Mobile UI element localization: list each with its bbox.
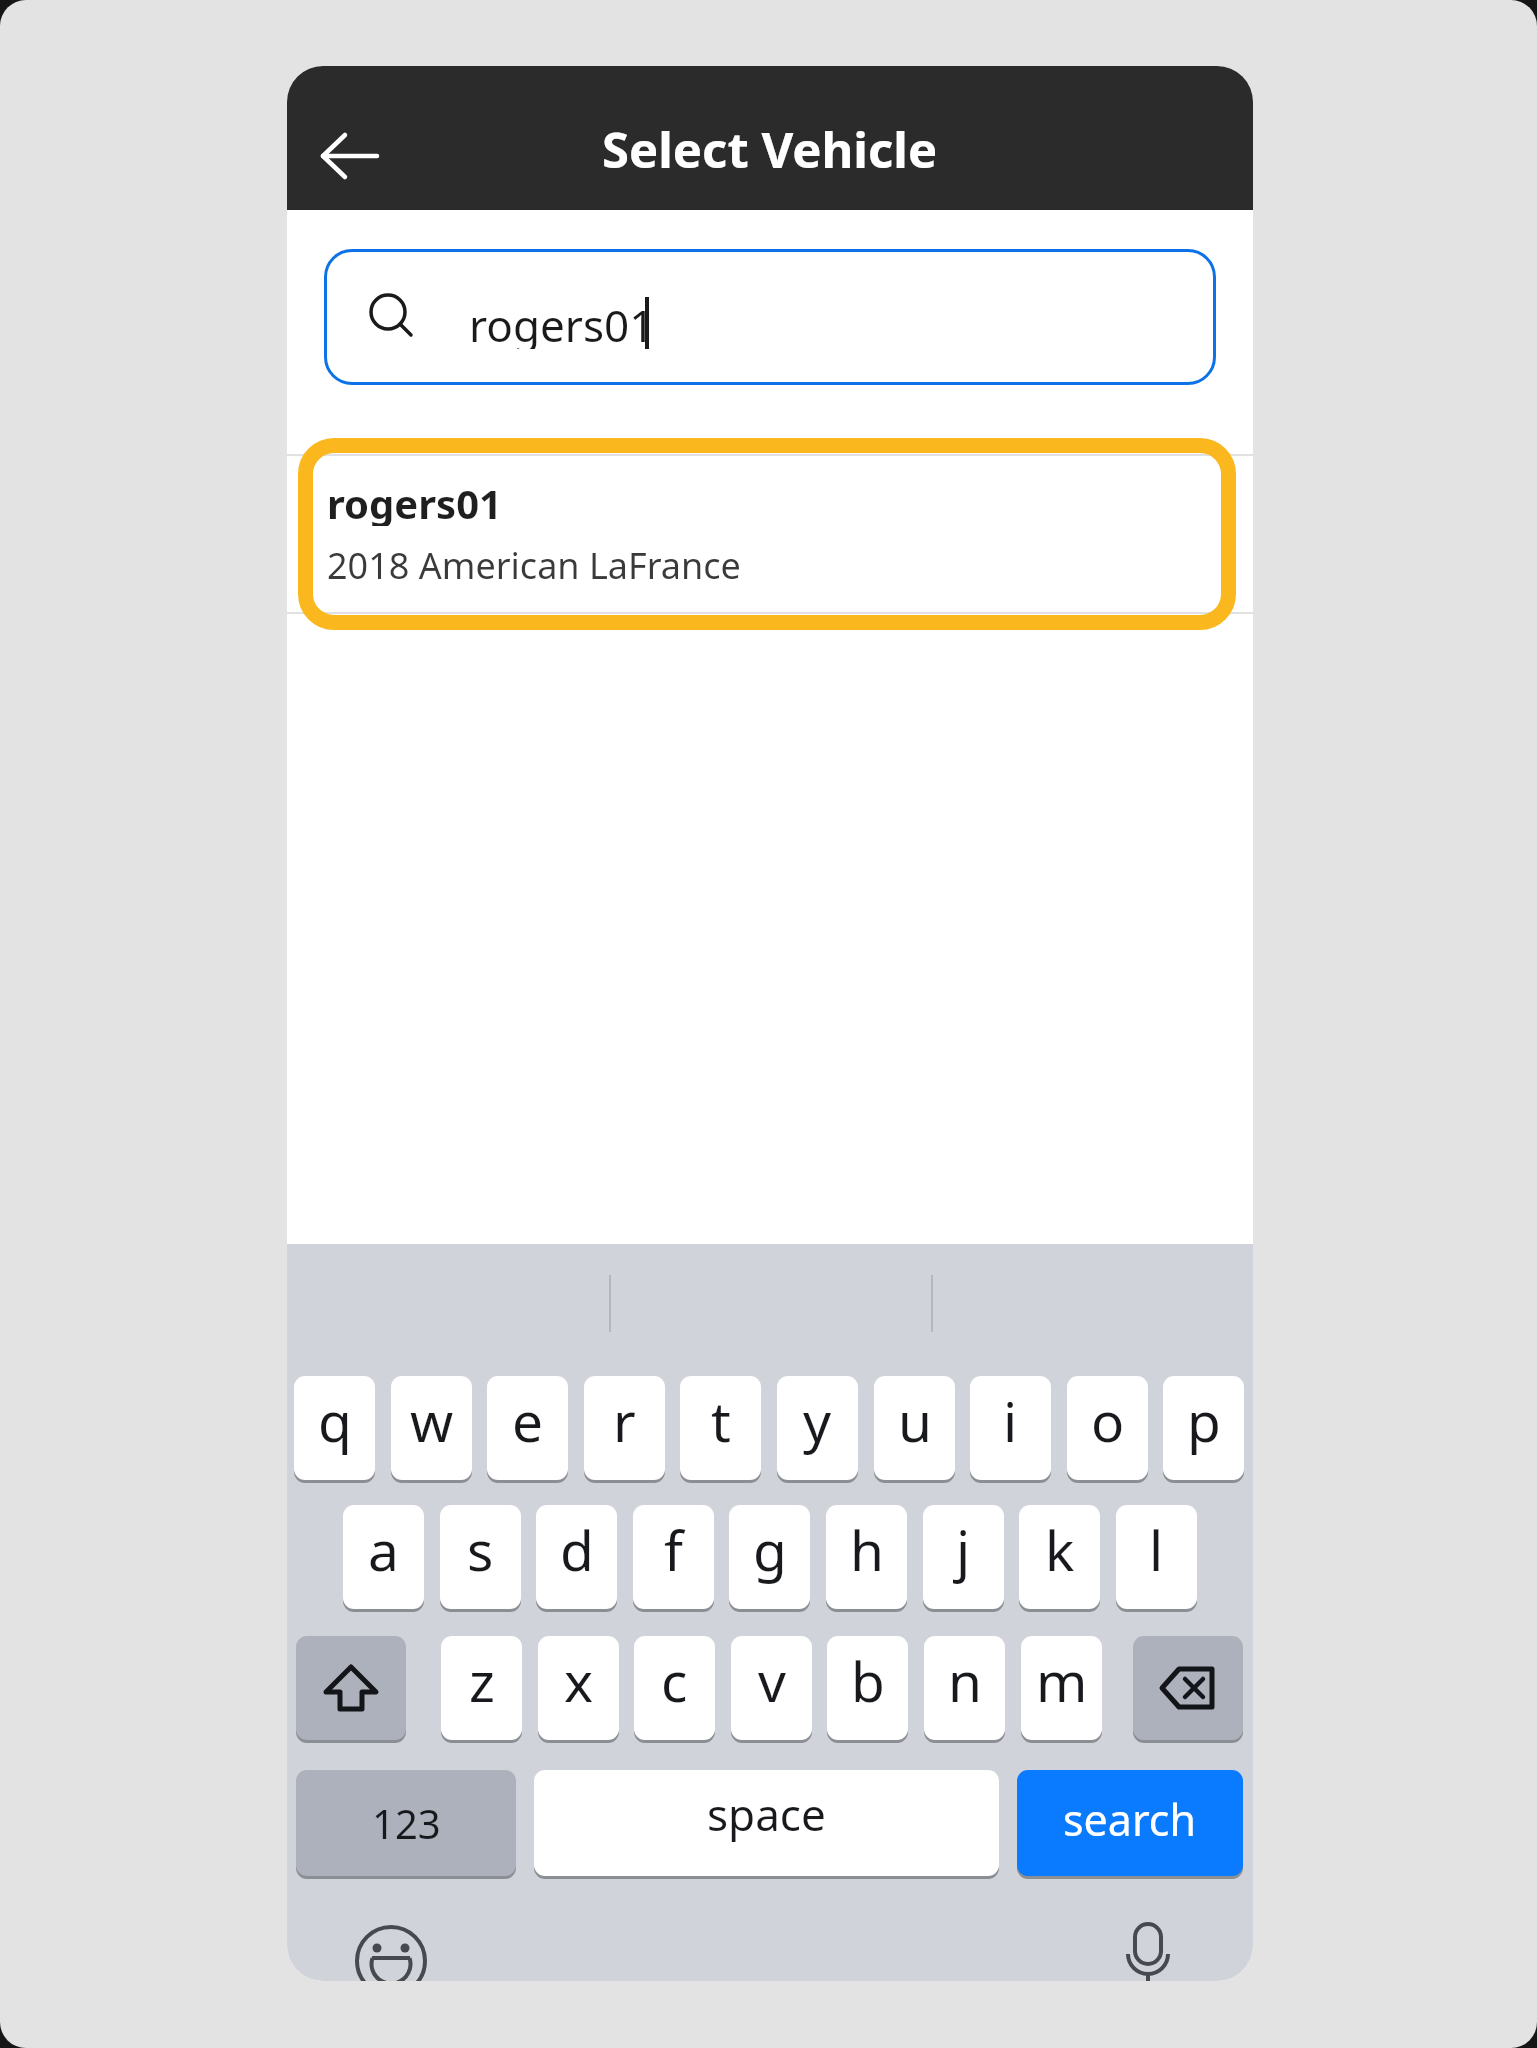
- button[interactable]: k: [1019, 1505, 1100, 1609]
- staticText: a: [368, 1512, 399, 1587]
- staticText: space: [707, 1784, 826, 1844]
- staticText: m: [1036, 1643, 1088, 1718]
- staticText: e: [512, 1383, 544, 1458]
- staticText: s: [467, 1512, 494, 1587]
- button[interactable]: [1133, 1636, 1243, 1740]
- button[interactable]: space: [534, 1770, 999, 1876]
- staticText: 123: [372, 1796, 441, 1850]
- button[interactable]: c: [634, 1636, 715, 1740]
- button[interactable]: a: [343, 1505, 424, 1609]
- staticText: u: [898, 1383, 932, 1458]
- staticText: q: [318, 1383, 352, 1458]
- button[interactable]: [1120, 1920, 1176, 1981]
- button[interactable]: r: [584, 1376, 665, 1480]
- button[interactable]: h: [826, 1505, 907, 1609]
- staticText: search: [1063, 1790, 1197, 1849]
- staticText: y: [803, 1383, 832, 1458]
- staticText: c: [661, 1643, 688, 1718]
- button[interactable]: [298, 438, 1236, 630]
- button[interactable]: i: [970, 1376, 1051, 1480]
- button[interactable]: f: [633, 1505, 714, 1609]
- staticText: l: [1149, 1512, 1164, 1587]
- button[interactable]: [353, 1923, 429, 1981]
- staticText: w: [410, 1383, 454, 1458]
- button[interactable]: l: [1116, 1505, 1197, 1609]
- button[interactable]: [307, 122, 397, 190]
- button[interactable]: n: [924, 1636, 1005, 1740]
- staticText: rogers01: [469, 295, 655, 349]
- button[interactable]: o: [1067, 1376, 1148, 1480]
- button[interactable]: j: [923, 1505, 1004, 1609]
- button[interactable]: e: [487, 1376, 568, 1480]
- staticText: j: [956, 1512, 971, 1587]
- staticText: g: [753, 1512, 787, 1587]
- staticText: v: [758, 1643, 786, 1718]
- button[interactable]: [324, 249, 1216, 385]
- staticText: i: [1003, 1383, 1018, 1458]
- button[interactable]: g: [729, 1505, 810, 1609]
- staticText: p: [1187, 1383, 1221, 1458]
- button[interactable]: b: [827, 1636, 908, 1740]
- button[interactable]: q: [294, 1376, 375, 1480]
- button[interactable]: 123: [296, 1770, 516, 1876]
- staticText: 2018 American LaFrance: [327, 541, 741, 590]
- staticText: x: [564, 1643, 594, 1718]
- button[interactable]: s: [440, 1505, 521, 1609]
- staticText: f: [664, 1512, 683, 1587]
- button[interactable]: x: [538, 1636, 619, 1740]
- button[interactable]: search: [1017, 1770, 1243, 1876]
- staticText: t: [711, 1383, 731, 1458]
- button[interactable]: t: [680, 1376, 761, 1480]
- button[interactable]: v: [731, 1636, 812, 1740]
- staticText: o: [1091, 1383, 1125, 1458]
- button[interactable]: [296, 1636, 406, 1740]
- staticText: Select Vehicle: [602, 116, 938, 174]
- button[interactable]: p: [1163, 1376, 1244, 1480]
- button[interactable]: u: [874, 1376, 955, 1480]
- button[interactable]: w: [391, 1376, 472, 1480]
- staticText: n: [948, 1643, 982, 1718]
- button[interactable]: z: [441, 1636, 522, 1740]
- button[interactable]: y: [777, 1376, 858, 1480]
- button[interactable]: d: [536, 1505, 617, 1609]
- staticText: k: [1045, 1512, 1075, 1587]
- staticText: rogers01: [327, 476, 502, 526]
- button[interactable]: m: [1021, 1636, 1102, 1740]
- staticText: d: [560, 1512, 594, 1587]
- staticText: r: [613, 1383, 636, 1458]
- staticText: b: [851, 1643, 885, 1718]
- staticText: h: [850, 1512, 884, 1587]
- staticText: z: [469, 1643, 495, 1718]
